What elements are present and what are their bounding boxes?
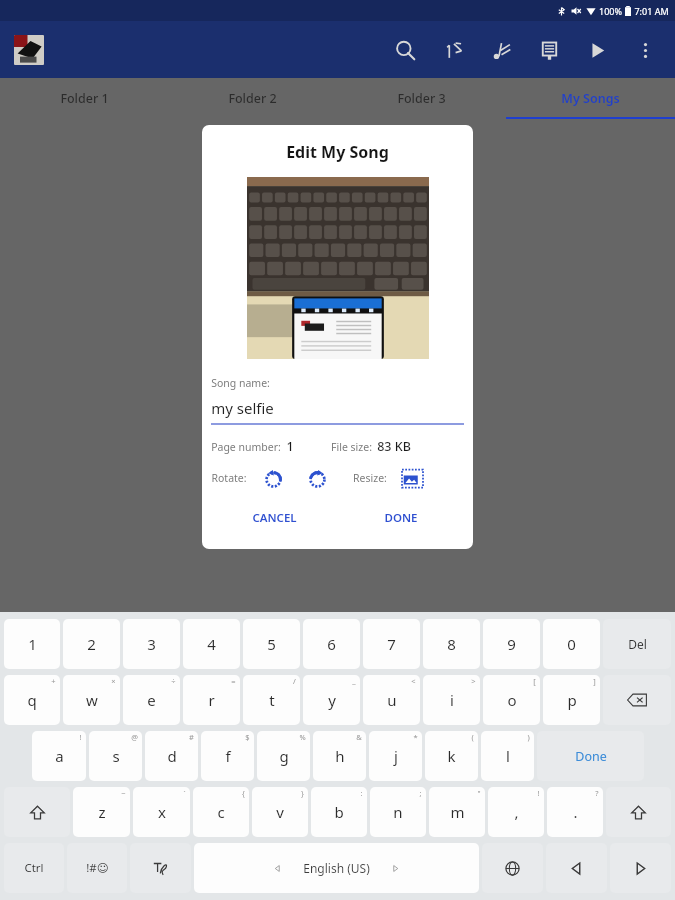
button[interactable]: 6 (303, 619, 360, 669)
staticText: b (334, 802, 344, 822)
staticText: r (208, 690, 215, 710)
button[interactable]: o (483, 675, 540, 725)
button[interactable]: v (252, 787, 308, 837)
button[interactable]: z (73, 787, 130, 837)
button[interactable]: d (145, 731, 198, 781)
button[interactable]: g (257, 731, 310, 781)
staticText: 1 (28, 634, 37, 654)
staticText: Rotate: (211, 471, 247, 485)
staticText: Done (575, 748, 607, 765)
button[interactable]: Folder 3 (337, 78, 506, 119)
button[interactable]: s (89, 731, 142, 781)
staticText: v (276, 802, 284, 822)
button[interactable]: l (481, 731, 534, 781)
button[interactable]: Shift (606, 787, 671, 837)
button[interactable]: a (32, 731, 86, 781)
button[interactable]: . (547, 787, 603, 837)
staticText: : (360, 788, 363, 798)
button[interactable]: Music (477, 26, 525, 74)
button[interactable]: CANCEL (211, 499, 337, 537)
button[interactable]: Backspace (603, 675, 671, 725)
button[interactable]: k (425, 731, 478, 781)
staticText: 3 (147, 634, 156, 654)
button[interactable]: e (123, 675, 180, 725)
staticText: 9 (507, 634, 516, 654)
button[interactable]: Rotate right (303, 464, 331, 492)
staticText: + (51, 676, 56, 686)
button[interactable]: 2 (63, 619, 120, 669)
button[interactable]: DONE (337, 499, 464, 537)
button[interactable]: Search (381, 26, 429, 74)
button[interactable]: Page navigation (429, 26, 477, 74)
button[interactable]: q (4, 675, 60, 725)
button[interactable]: 4 (183, 619, 240, 669)
button[interactable]: 1 (4, 619, 60, 669)
staticText: 4 (207, 634, 216, 654)
button[interactable]: Folder 1 (0, 78, 168, 119)
button[interactable]: y (303, 675, 360, 725)
button[interactable]: f (201, 731, 254, 781)
button[interactable]: 5 (243, 619, 300, 669)
button[interactable]: Save (525, 26, 573, 74)
staticText: * (413, 732, 418, 742)
button[interactable]: Change language (482, 843, 543, 893)
staticText: DONE (384, 510, 418, 526)
button[interactable]: b (311, 787, 367, 837)
staticText: 83 KB (377, 438, 411, 455)
staticText: 6 (327, 634, 336, 654)
button[interactable]: Resize (397, 463, 427, 493)
staticText: t (269, 690, 275, 710)
button[interactable]: Folder 2 (168, 78, 337, 119)
button[interactable]: h (313, 731, 366, 781)
button[interactable]: m (429, 787, 485, 837)
staticText: ! (79, 732, 82, 742)
button[interactable]: i (423, 675, 480, 725)
staticText: ; (419, 788, 422, 798)
staticText: 0 (567, 634, 576, 654)
button[interactable]: My Songs (506, 78, 675, 119)
button[interactable]: Move left (546, 843, 607, 893)
button[interactable]: , (488, 787, 544, 837)
staticText: 7:01 AM (634, 5, 669, 17)
button[interactable]: More options (621, 26, 669, 74)
staticText: English (US) (303, 860, 370, 876)
staticText: m (450, 802, 465, 822)
button[interactable]: 8 (423, 619, 480, 669)
button[interactable]: j (369, 731, 422, 781)
button[interactable]: x (133, 787, 190, 837)
staticText: q (27, 690, 37, 710)
button[interactable]: !#☺ (67, 843, 127, 893)
staticText: " (477, 788, 481, 798)
staticText: Page number: (211, 440, 281, 454)
button[interactable]: App logo (14, 35, 44, 65)
staticText: ] (593, 676, 596, 686)
button[interactable]: Move right (610, 843, 671, 893)
button[interactable]: Ctrl (4, 843, 64, 893)
button[interactable]: Shift (4, 787, 70, 837)
staticText: 7 (387, 634, 396, 654)
button[interactable]: Rotate left (259, 464, 287, 492)
staticText: Song name: (211, 376, 270, 390)
button[interactable]: c (193, 787, 249, 837)
button[interactable]: English (US) (194, 843, 479, 893)
staticText: _ (352, 676, 356, 686)
button[interactable]: 0 (543, 619, 600, 669)
button[interactable]: t (243, 675, 300, 725)
button[interactable]: Handwriting (130, 843, 191, 893)
button[interactable]: n (370, 787, 426, 837)
staticText: ÷ (171, 676, 176, 686)
button[interactable]: u (363, 675, 420, 725)
button[interactable]: Done (537, 731, 644, 781)
button[interactable]: 9 (483, 619, 540, 669)
button[interactable]: r (183, 675, 240, 725)
button[interactable]: 7 (363, 619, 420, 669)
button[interactable]: w (63, 675, 120, 725)
staticText: . (573, 802, 578, 822)
staticText: f (225, 746, 231, 766)
staticText: s (112, 746, 120, 766)
button[interactable]: my selfie (211, 398, 464, 425)
button[interactable]: p (543, 675, 600, 725)
button[interactable]: 3 (123, 619, 180, 669)
button[interactable]: Play (573, 26, 621, 74)
button[interactable]: Del (603, 619, 671, 669)
